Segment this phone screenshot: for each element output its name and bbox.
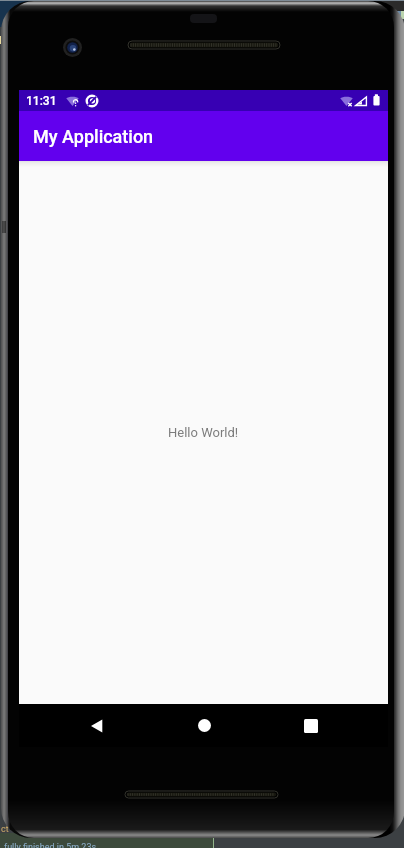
button[interactable]: Home	[182, 704, 226, 747]
staticText: fully finished in 5m 23s	[4, 842, 97, 848]
button[interactable]: My Application	[19, 111, 388, 161]
staticText: Hello World!	[168, 425, 239, 440]
button[interactable]: Back	[75, 704, 119, 747]
staticText: My Application	[33, 126, 154, 147]
staticText: ct	[1, 824, 9, 835]
staticText: 11:31	[26, 94, 57, 108]
button[interactable]: Recent apps	[288, 704, 333, 747]
